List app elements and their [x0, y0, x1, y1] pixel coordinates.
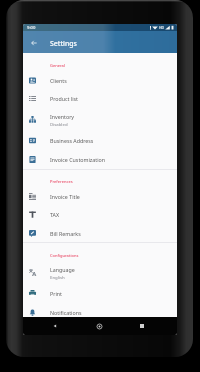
- button[interactable]: Business Address: [23, 131, 177, 150]
- staticText: Preferences: [50, 179, 73, 184]
- staticText: Bill Remarks: [50, 230, 81, 237]
- staticText: Product list: [50, 95, 79, 102]
- button[interactable]: Home: [92, 319, 106, 333]
- button[interactable]: Invoice Customization: [23, 150, 177, 169]
- staticText: Inventory: [50, 113, 75, 120]
- staticText: Disabled: [50, 121, 68, 127]
- button[interactable]: Bill Remarks: [23, 224, 177, 243]
- staticText: Settings: [50, 39, 77, 48]
- button[interactable]: Invoice Title: [23, 187, 177, 206]
- button[interactable]: Product list: [23, 89, 177, 108]
- staticText: Clients: [50, 77, 67, 84]
- button[interactable]: Clients: [23, 71, 177, 90]
- button[interactable]: TAX: [23, 205, 177, 224]
- staticText: Language: [50, 266, 75, 273]
- staticText: Invoice Title: [50, 193, 80, 200]
- staticText: TAX: [50, 211, 60, 218]
- staticText: Business Address: [50, 137, 94, 144]
- staticText: General: [50, 63, 65, 68]
- staticText: Configurations: [50, 253, 79, 258]
- button[interactable]: Print: [23, 284, 177, 303]
- staticText: Notifications: [50, 309, 82, 316]
- staticText: HD: [159, 25, 164, 30]
- button[interactable]: Notifications: [23, 303, 177, 322]
- staticText: 9:00: [27, 25, 36, 31]
- button[interactable]: Language: [23, 261, 177, 284]
- staticText: English: [50, 274, 65, 280]
- staticText: Invoice Customization: [50, 156, 106, 163]
- button[interactable]: Recents: [135, 319, 149, 333]
- button[interactable]: Inventory: [23, 108, 177, 131]
- button[interactable]: Back: [26, 35, 42, 51]
- staticText: Print: [50, 290, 62, 297]
- button[interactable]: Back: [48, 319, 62, 333]
